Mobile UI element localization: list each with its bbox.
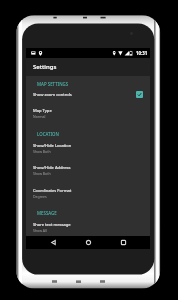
button[interactable]: Show/Hide Location — [26, 141, 150, 155]
button[interactable]: Coordinates Format — [26, 186, 150, 200]
button[interactable]: Recent apps — [111, 236, 135, 249]
staticText: Show All — [33, 228, 47, 233]
staticText: Show/Hide Location — [33, 143, 72, 149]
staticText: Show Both — [33, 171, 51, 176]
staticText: Normal — [33, 114, 46, 119]
button[interactable]: Home — [76, 236, 100, 249]
staticText: 10:31 — [136, 50, 148, 56]
staticText: LOCATION — [37, 131, 59, 137]
staticText: Show/Hide Address — [33, 165, 71, 171]
staticText: Share text message — [33, 222, 71, 228]
staticText: MESSAGE — [37, 210, 57, 216]
button[interactable]: Back — [41, 236, 65, 249]
staticText: MAP SETTINGS — [37, 81, 69, 87]
staticText: Coordinates Format — [33, 188, 72, 194]
staticText: Degrees — [33, 194, 47, 199]
staticText: Show zoom controls — [33, 92, 72, 98]
button[interactable]: Share text message — [26, 220, 150, 234]
button[interactable]: Show/Hide Address — [26, 163, 150, 177]
button[interactable]: Show zoom controls — [26, 89, 150, 100]
staticText: Show Both — [33, 149, 51, 154]
staticText: Map Type — [33, 108, 52, 114]
staticText: Settings — [33, 63, 57, 71]
button[interactable]: Map Type — [26, 106, 150, 120]
